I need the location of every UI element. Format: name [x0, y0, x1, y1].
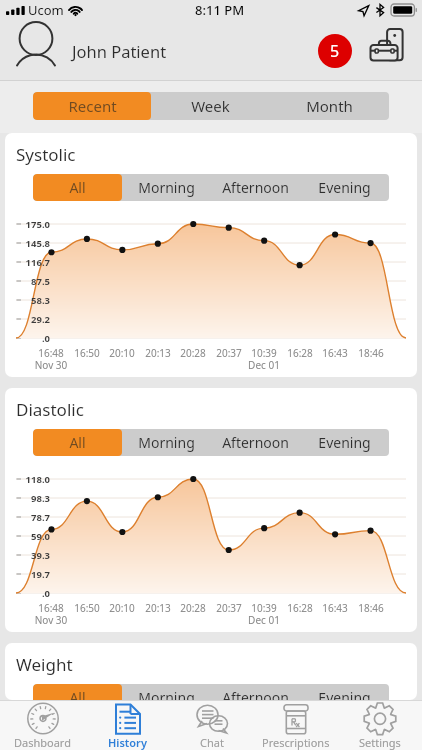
button[interactable]: Morning	[122, 684, 211, 700]
button[interactable]: Recent	[33, 92, 151, 120]
staticText: 16:50	[65, 346, 109, 360]
staticText: Evening	[318, 688, 371, 700]
staticText: 16:50	[65, 601, 109, 615]
staticText: 16:48	[29, 346, 73, 360]
staticText: 58.3	[12, 294, 50, 307]
staticText: Nov 30	[29, 358, 73, 372]
button[interactable]: History	[85, 700, 170, 750]
staticText: 20:10	[100, 601, 144, 615]
staticText: Systolic	[16, 143, 76, 166]
other: Profile	[17, 25, 55, 77]
staticText: 98.3	[12, 492, 50, 505]
staticText: All	[69, 433, 86, 452]
staticText: Weight	[16, 653, 73, 676]
button[interactable]: Chat	[170, 700, 254, 750]
button[interactable]: Evening	[300, 429, 389, 456]
staticText: 16:48	[29, 601, 73, 615]
staticText: 16:28	[278, 601, 322, 615]
button[interactable]: Evening	[300, 684, 389, 700]
staticText: 20:28	[171, 601, 215, 615]
staticText: 10:39	[242, 601, 286, 615]
staticText: .0	[12, 587, 50, 600]
staticText: Diastolic	[16, 398, 84, 421]
button[interactable]: Week	[151, 92, 270, 120]
staticText: All	[69, 688, 86, 700]
staticText: 20:28	[171, 346, 215, 360]
staticText: 20:37	[207, 346, 251, 360]
button[interactable]: Evening	[300, 174, 389, 201]
staticText: 20:13	[136, 601, 180, 615]
staticText: John Patient	[72, 40, 167, 62]
staticText: Prescriptions	[262, 735, 330, 750]
staticText: 10:39	[242, 346, 286, 360]
staticText: Morning	[138, 688, 195, 700]
staticText: Nov 30	[29, 613, 73, 627]
button[interactable]: Settings	[338, 700, 422, 750]
button[interactable]: Afternoon	[211, 429, 300, 456]
staticText: Month	[306, 96, 353, 116]
staticText: 78.7	[12, 511, 50, 524]
button[interactable]: 5	[318, 34, 352, 68]
staticText: Week	[191, 96, 230, 116]
button[interactable]: Dashboard	[0, 700, 85, 750]
staticText: 18:46	[349, 346, 393, 360]
button[interactable]: All	[33, 684, 122, 700]
staticText: 20:13	[136, 346, 180, 360]
staticText: 20:10	[100, 346, 144, 360]
staticText: 16:43	[313, 601, 357, 615]
staticText: 16:28	[278, 346, 322, 360]
staticText: Dashboard	[14, 735, 71, 750]
staticText: Recent	[68, 96, 117, 116]
staticText: 5	[330, 40, 340, 62]
staticText: Morning	[138, 178, 195, 197]
staticText: 18:46	[349, 601, 393, 615]
staticText: 20:37	[207, 601, 251, 615]
staticText: All	[69, 178, 86, 197]
staticText: Afternoon	[222, 178, 289, 197]
button[interactable]: Morning	[122, 174, 211, 201]
staticText: 59.0	[12, 530, 50, 543]
staticText: Evening	[318, 178, 371, 197]
button[interactable]: All	[33, 429, 122, 456]
button[interactable]: Afternoon	[211, 174, 300, 201]
staticText: 39.3	[12, 549, 50, 562]
staticText: Dec 01	[242, 613, 286, 627]
staticText: 8:11 PM	[195, 1, 245, 19]
staticText: 29.2	[12, 313, 50, 326]
staticText: 16:43	[313, 346, 357, 360]
staticText: 87.5	[12, 275, 50, 288]
staticText: Dec 01	[242, 358, 286, 372]
staticText: 145.8	[12, 237, 50, 250]
button[interactable]: Afternoon	[211, 684, 300, 700]
staticText: Afternoon	[222, 688, 289, 700]
button[interactable]: All	[33, 174, 122, 201]
staticText: Afternoon	[222, 433, 289, 452]
staticText: Ucom	[28, 1, 64, 19]
staticText: History	[108, 735, 147, 750]
button[interactable]: Toolbox	[370, 27, 403, 61]
staticText: Evening	[318, 433, 371, 452]
staticText: .0	[12, 332, 50, 345]
staticText: 19.7	[12, 568, 50, 581]
staticText: 118.0	[12, 473, 50, 486]
button[interactable]: Morning	[122, 429, 211, 456]
staticText: 116.7	[12, 256, 50, 269]
staticText: Morning	[138, 433, 195, 452]
staticText: Settings	[359, 735, 401, 750]
button[interactable]: Month	[270, 92, 389, 120]
staticText: 175.0	[12, 218, 50, 231]
button[interactable]: Prescriptions	[254, 700, 338, 750]
staticText: Chat	[200, 735, 224, 750]
